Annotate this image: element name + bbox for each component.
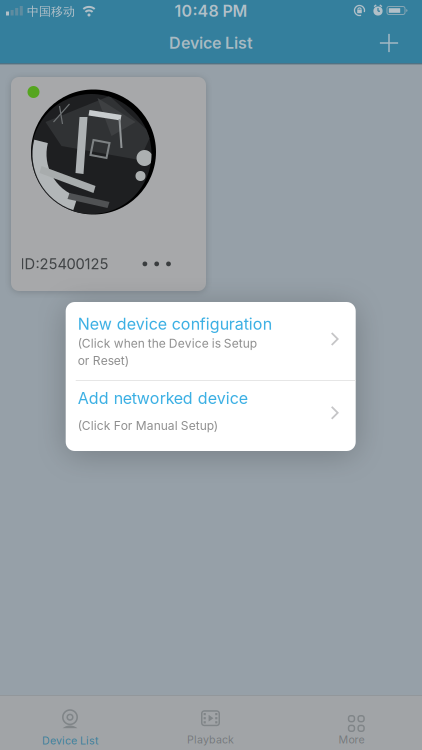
staticText: Playback	[187, 733, 234, 746]
staticText: Add networked device	[78, 389, 248, 408]
staticText: ID:25400125	[20, 255, 108, 273]
staticText: More	[338, 733, 364, 746]
button[interactable]: Add device	[379, 33, 399, 53]
button[interactable]: More options	[132, 251, 181, 276]
staticText: (Click when the Device is Setup	[78, 336, 257, 351]
staticText: 10:48 PM	[174, 2, 247, 20]
button[interactable]: Playback	[140, 701, 281, 750]
button[interactable]: New device configuration	[66, 302, 356, 380]
button[interactable]: Add networked device	[66, 381, 356, 452]
staticText: (Click For Manual Setup)	[78, 419, 218, 433]
staticText: Device List	[42, 734, 98, 747]
staticText: 中国移动	[27, 4, 75, 19]
staticText: New device configuration	[78, 314, 272, 333]
staticText: or Reset)	[78, 353, 129, 368]
button[interactable]: ID:25400125	[11, 77, 206, 291]
staticText: Device List	[169, 34, 253, 52]
button[interactable]: More	[281, 701, 422, 750]
button[interactable]: Device List	[0, 701, 140, 750]
